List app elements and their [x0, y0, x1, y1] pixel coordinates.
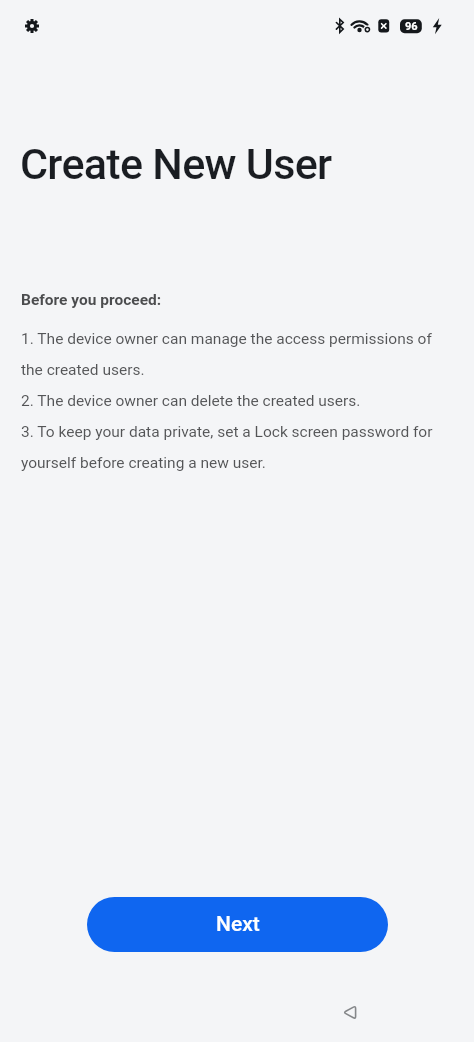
button[interactable] — [330, 995, 370, 1031]
staticText: 96 — [405, 20, 418, 33]
staticText: Before you proceed: — [21, 291, 162, 309]
button[interactable]: Next — [87, 897, 388, 952]
staticText: Create New User — [20, 139, 332, 189]
staticText: 1. The device owner can manage the acces… — [21, 319, 433, 474]
staticText: Next — [216, 912, 260, 937]
